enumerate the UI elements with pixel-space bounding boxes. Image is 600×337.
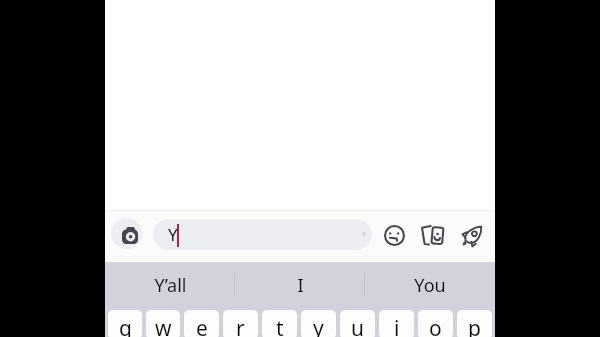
- button[interactable]: o: [418, 310, 453, 337]
- staticText: You: [414, 273, 446, 298]
- button[interactable]: t: [262, 310, 297, 337]
- button[interactable]: Y’all: [105, 262, 235, 308]
- button[interactable]: r: [223, 310, 258, 337]
- staticText: w: [155, 314, 172, 337]
- staticText: Y’all: [154, 273, 187, 298]
- button[interactable]: I: [235, 262, 365, 308]
- staticText: q: [119, 314, 132, 337]
- staticText: p: [468, 314, 481, 337]
- button[interactable]: Emoji: [378, 219, 410, 251]
- button[interactable]: Apps: [455, 219, 487, 251]
- staticText: e: [196, 314, 208, 337]
- button[interactable]: q: [108, 310, 142, 337]
- button[interactable]: y: [301, 310, 336, 337]
- staticText: y: [313, 314, 324, 337]
- staticText: r: [236, 314, 245, 337]
- button[interactable]: Stickers: [417, 220, 449, 252]
- button[interactable]: p: [457, 310, 492, 337]
- staticText: I: [297, 273, 304, 298]
- staticText: u: [351, 314, 364, 337]
- button[interactable]: You: [365, 262, 495, 308]
- staticText: Y: [168, 223, 178, 246]
- button[interactable]: Y: [153, 219, 372, 250]
- button[interactable]: e: [184, 310, 219, 337]
- button[interactable]: u: [340, 310, 375, 337]
- staticText: t: [276, 314, 284, 337]
- button[interactable]: w: [146, 310, 180, 337]
- button[interactable]: Take photo: [111, 218, 142, 249]
- staticText: o: [429, 314, 442, 337]
- staticText: i: [394, 314, 400, 337]
- button[interactable]: i: [379, 310, 414, 337]
